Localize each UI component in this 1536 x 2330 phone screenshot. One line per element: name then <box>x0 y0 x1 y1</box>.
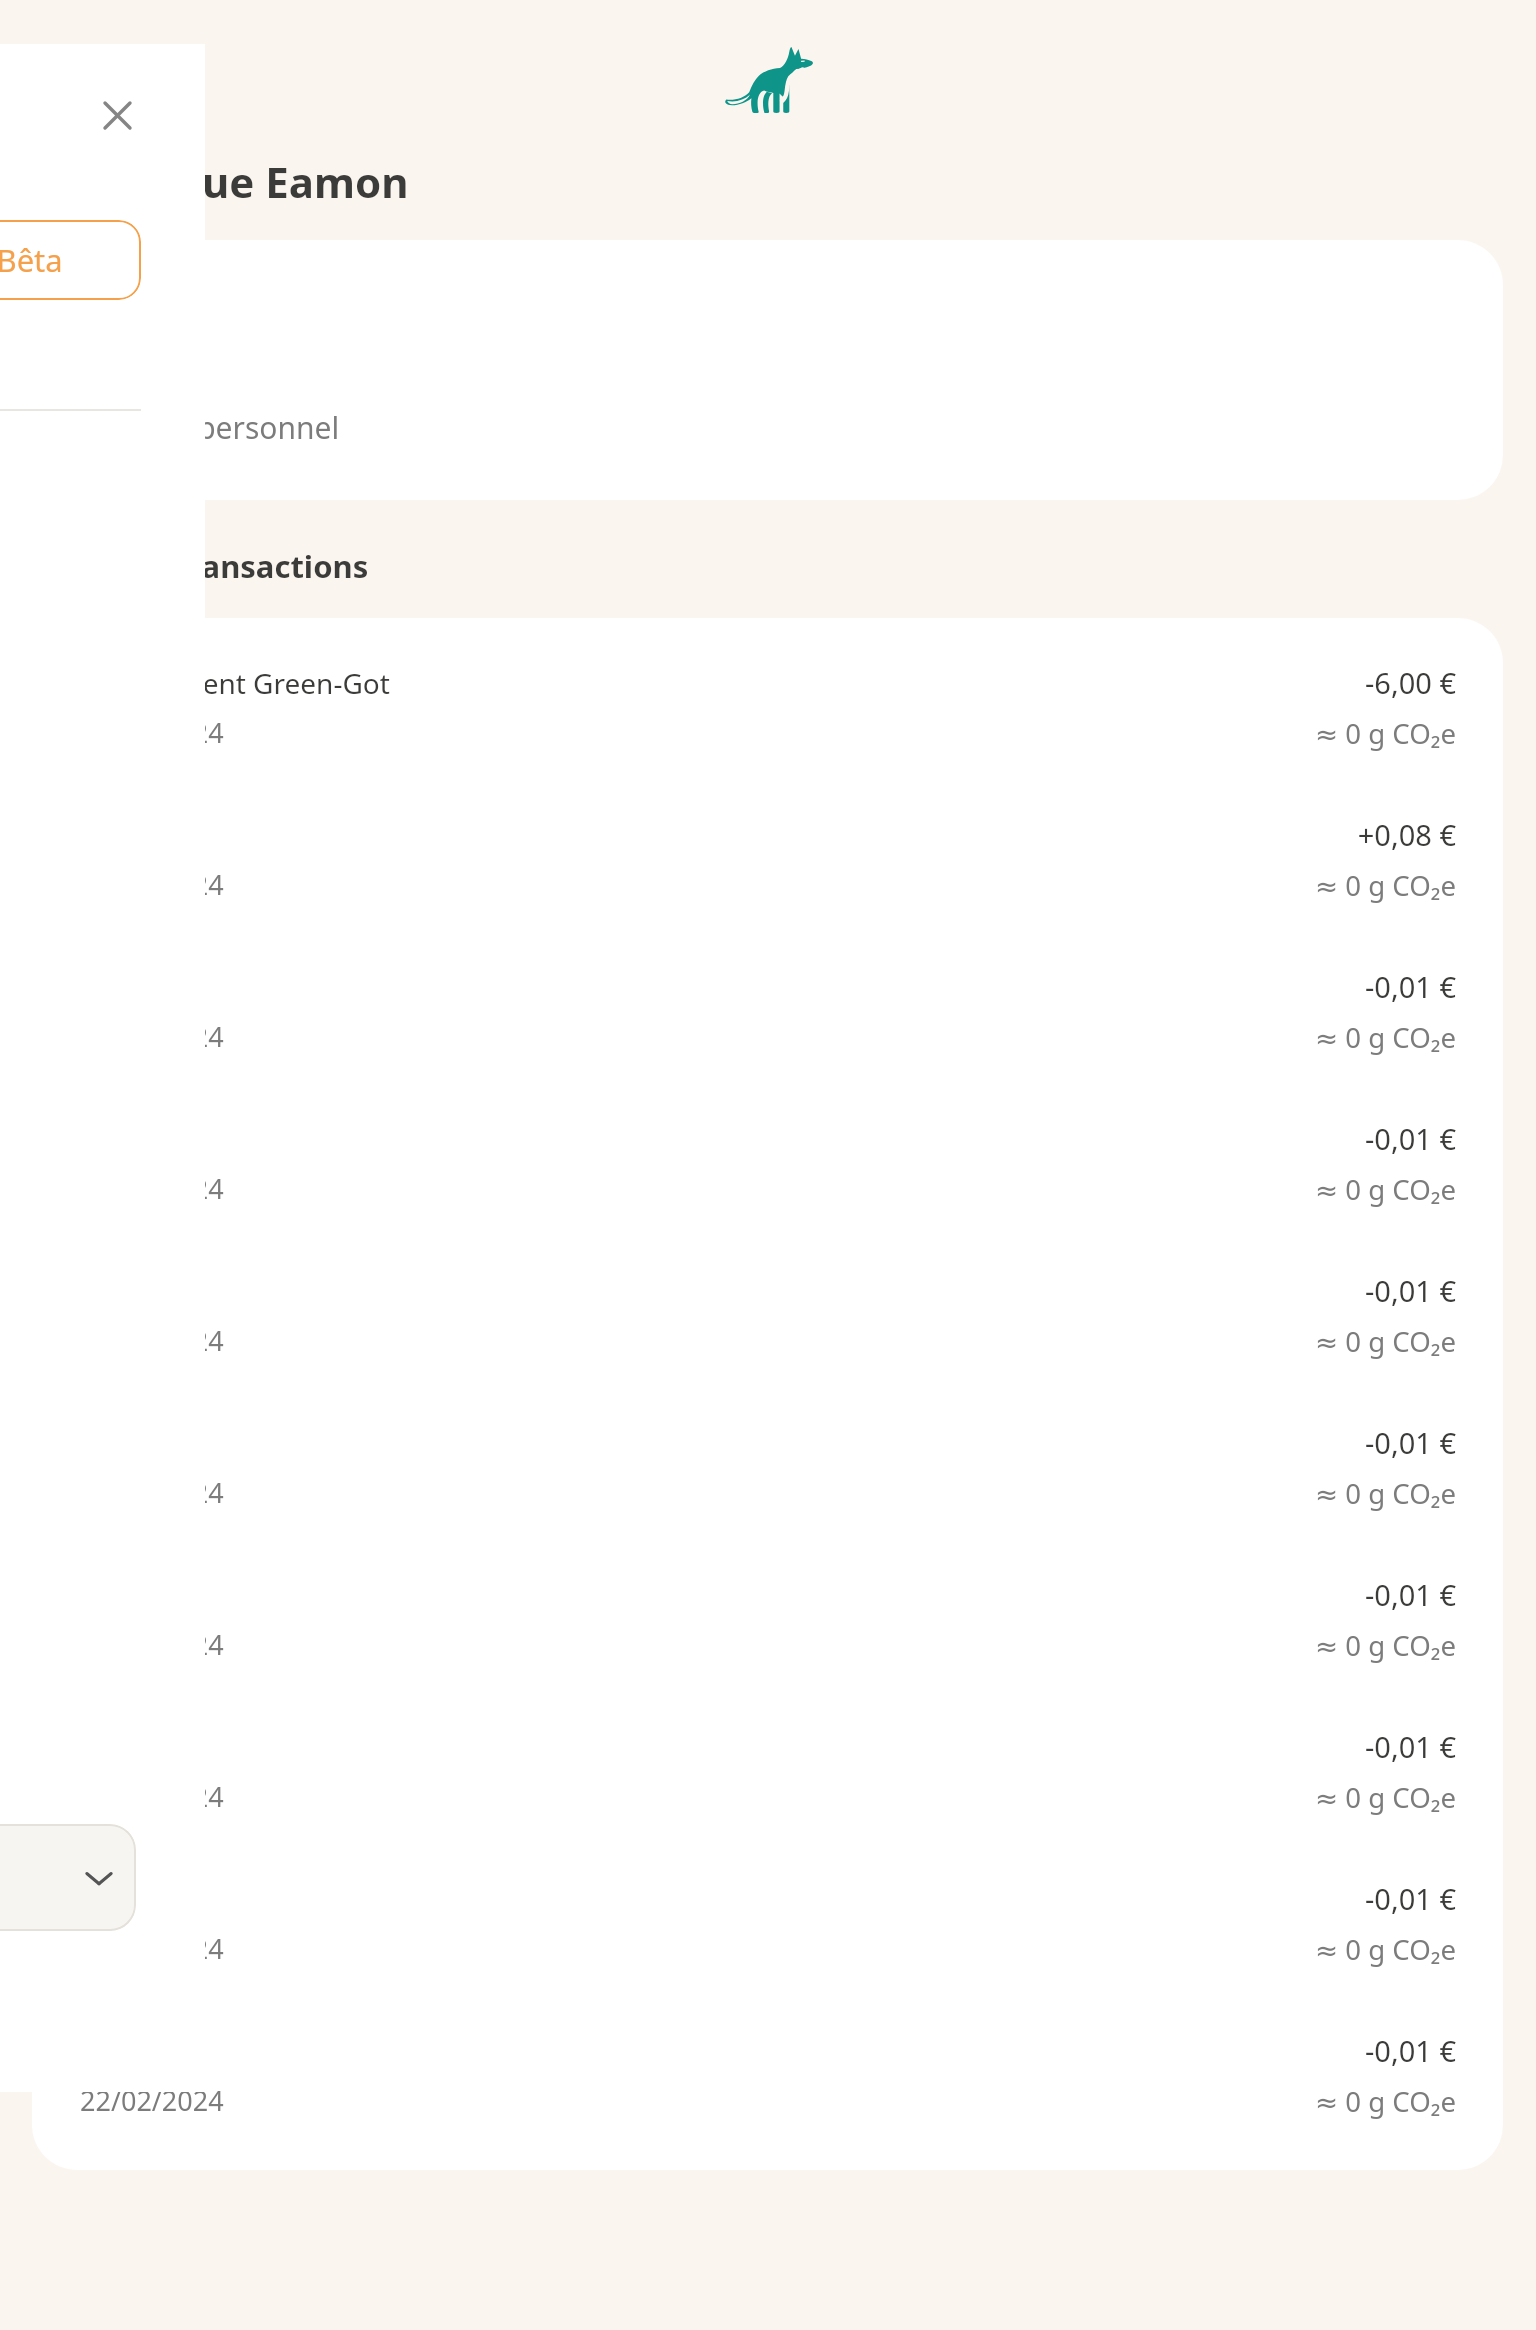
staticText: 22/02/2024 <box>80 1018 224 1055</box>
staticText: ≈ 0 g CO₂e <box>32 1322 1456 1360</box>
button[interactable]: Frais <box>32 1530 1503 1682</box>
button[interactable]: Mode Bêta <box>0 220 141 300</box>
staticText: ≈ 0 g CO₂e <box>32 1778 1456 1816</box>
staticText: -0,01 € <box>32 1271 1456 1310</box>
button[interactable]: Frais <box>32 1074 1503 1226</box>
button[interactable]: Abonnement Green-Got <box>32 618 1503 770</box>
staticText: -0,01 € <box>32 1119 1456 1158</box>
staticText: +0,08 € <box>32 815 1456 854</box>
staticText: 22/02/2024 <box>80 1778 224 1815</box>
staticText: 22/02/2024 <box>80 1474 224 1511</box>
staticText: ≈ 0 g CO₂e <box>32 1018 1456 1056</box>
staticText: ≈ 0 g CO₂e <box>32 714 1456 752</box>
button[interactable]: Frais <box>32 1378 1503 1530</box>
staticText: ≈ 0 g CO₂e <box>32 2082 1456 2120</box>
staticText: -0,01 € <box>32 1879 1456 1918</box>
staticText: 22/02/2024 <box>80 2082 224 2119</box>
staticText: 22/02/2024 <box>80 1930 224 1967</box>
staticText: ≈ 0 g CO₂e <box>32 1474 1456 1512</box>
staticText: -6,00 € <box>32 663 1456 702</box>
staticText: Abonnement Green-Got <box>74 664 390 702</box>
staticText: 22/02/2024 <box>80 1322 224 1359</box>
button[interactable]: Frais <box>32 1682 1503 1834</box>
button[interactable]: Frais <box>32 1226 1503 1378</box>
button[interactable]: Choisir un compte <box>0 1824 136 1931</box>
staticText: Transactions <box>172 545 369 587</box>
staticText: 22/02/2024 <box>80 866 224 903</box>
button[interactable]: Frais <box>32 1834 1503 1986</box>
button[interactable] <box>32 240 1503 500</box>
staticText: Compte personnel <box>78 407 340 448</box>
staticText: Frais <box>74 1880 136 1918</box>
staticText: -0,01 € <box>32 1423 1456 1462</box>
staticText: 22/02/2024 <box>80 714 224 751</box>
staticText: -0,01 € <box>32 1575 1456 1614</box>
staticText: ≈ 0 g CO₂e <box>32 1170 1456 1208</box>
staticText: Compte de banque Eamon <box>0 153 409 210</box>
button[interactable]: Frais <box>32 922 1503 1074</box>
button[interactable]: Frais <box>32 1986 1503 2138</box>
button[interactable]: Intérêts <box>32 770 1503 922</box>
staticText: ≈ 0 g CO₂e <box>32 866 1456 904</box>
staticText: -0,01 € <box>32 1727 1456 1766</box>
staticText: ≈ 0 g CO₂e <box>32 1930 1456 1968</box>
staticText: ≈ 0 g CO₂e <box>32 1626 1456 1664</box>
staticText: -0,01 € <box>32 967 1456 1006</box>
staticText: Mode Bêta <box>0 239 63 281</box>
staticText: 22/02/2024 <box>80 1626 224 1663</box>
staticText: -0,01 € <box>32 2031 1456 2070</box>
staticText: 22/02/2024 <box>80 1170 224 1207</box>
button[interactable]: Fermer <box>91 89 143 141</box>
